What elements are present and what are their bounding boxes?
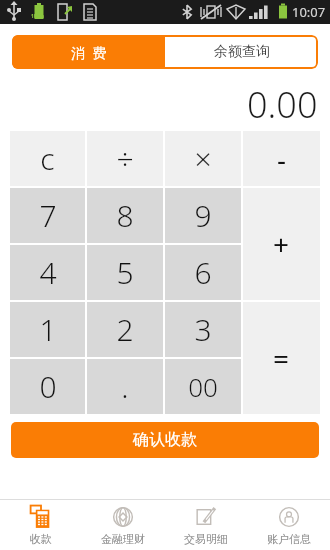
staticText: 账户信息 — [267, 532, 311, 546]
button[interactable]: 收款 — [0, 500, 82, 550]
staticText: 4 — [39, 252, 57, 293]
button[interactable]: 确认收款 — [11, 422, 319, 458]
staticText: ÷ — [116, 138, 134, 179]
staticText: 收款 — [30, 532, 52, 546]
button[interactable]: 9 — [165, 188, 241, 243]
staticText: 8 — [116, 195, 134, 236]
button[interactable]: 1 — [10, 302, 85, 357]
button[interactable]: c — [10, 131, 85, 186]
staticText: 余额查询 — [214, 43, 270, 61]
button[interactable]: 6 — [165, 245, 241, 300]
button[interactable]: 0 — [10, 359, 85, 414]
staticText: 3 — [194, 309, 212, 350]
button[interactable]: 5 — [87, 245, 163, 300]
staticText: 交易明细 — [184, 532, 228, 546]
button[interactable]: 00 — [165, 359, 241, 414]
button[interactable]: 4 — [10, 245, 85, 300]
button[interactable]: 消 费 — [12, 35, 165, 69]
staticText: . — [121, 366, 129, 407]
staticText: c — [40, 138, 55, 179]
staticText: 00 — [188, 369, 218, 404]
staticText: 10:07 — [292, 3, 326, 21]
staticText: 金融理财 — [101, 532, 145, 546]
button[interactable]: + — [243, 188, 320, 300]
staticText: 9 — [194, 195, 212, 236]
staticText: - — [277, 140, 287, 178]
button[interactable]: 交易明细 — [164, 500, 247, 550]
button[interactable]: 8 — [87, 188, 163, 243]
staticText: + — [273, 225, 290, 263]
button[interactable]: 账户信息 — [247, 500, 330, 550]
staticText: 5 — [116, 252, 134, 293]
staticText: 确认收款 — [133, 430, 197, 450]
staticText: 6 — [194, 252, 212, 293]
button[interactable]: ÷ — [87, 131, 163, 186]
staticText: 0 — [39, 366, 57, 407]
staticText: 2 — [116, 309, 134, 350]
button[interactable]: × — [165, 131, 241, 186]
button[interactable]: 7 — [10, 188, 85, 243]
button[interactable]: = — [243, 302, 320, 414]
staticText: 7 — [39, 195, 57, 236]
button[interactable]: - — [243, 131, 320, 186]
staticText: × — [194, 138, 212, 179]
button[interactable]: . — [87, 359, 163, 414]
staticText: 消 费 — [71, 43, 107, 62]
staticText: = — [273, 339, 290, 377]
button[interactable]: 金融理财 — [82, 500, 164, 550]
staticText: 100% — [31, 13, 45, 20]
button[interactable]: 3 — [165, 302, 241, 357]
button[interactable]: 2 — [87, 302, 163, 357]
staticText: 0.00 — [247, 80, 318, 129]
button[interactable]: 余额查询 — [165, 35, 318, 69]
staticText: 1 — [39, 309, 57, 350]
